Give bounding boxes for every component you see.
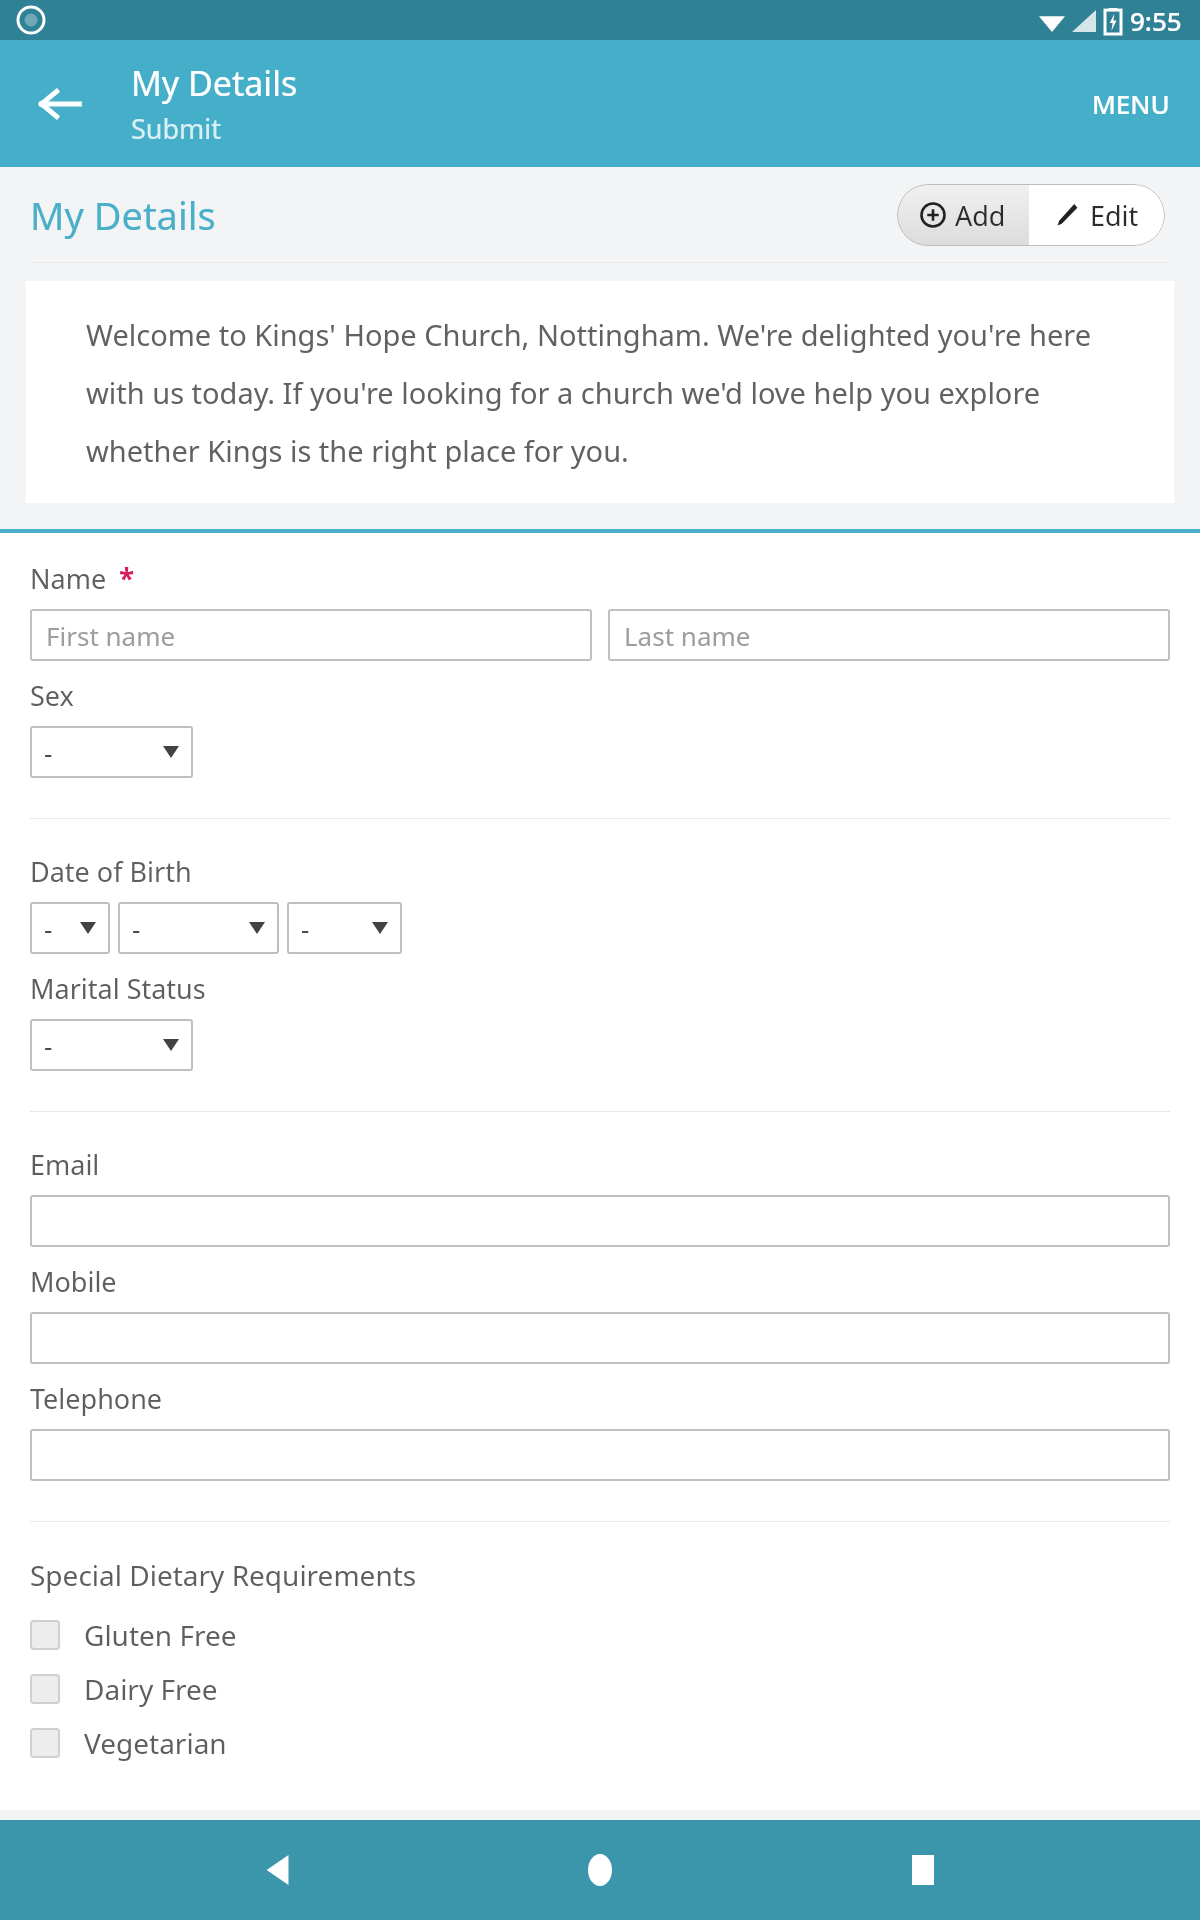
staticText: Edit <box>1090 197 1139 234</box>
staticText: Submit <box>131 110 222 147</box>
button[interactable]: Select option <box>30 902 110 954</box>
button[interactable]: Select option <box>287 902 402 954</box>
button[interactable]: MENU <box>1084 74 1178 133</box>
staticText: Name <box>30 560 107 597</box>
staticText: Gluten Free <box>84 1616 237 1654</box>
staticText: - <box>44 911 53 946</box>
button[interactable]: Select option <box>30 1019 193 1071</box>
staticText: Marital Status <box>30 970 206 1007</box>
staticText: - <box>132 911 141 946</box>
staticText: Welcome to Kings' Hope Church, Nottingha… <box>86 315 1114 470</box>
button[interactable]: Back <box>233 1825 323 1915</box>
staticText: Vegetarian <box>84 1724 227 1762</box>
button[interactable] <box>30 1195 1170 1247</box>
staticText: Telephone <box>30 1380 163 1417</box>
staticText: Dairy Free <box>84 1670 218 1708</box>
staticText: Date of Birth <box>30 853 192 890</box>
staticText: * <box>119 559 135 597</box>
staticText: - <box>44 1028 53 1063</box>
staticText: 9:55 <box>1130 3 1182 38</box>
staticText: MENU <box>1092 86 1170 121</box>
button[interactable]: Last name <box>608 609 1170 661</box>
staticText: Last name <box>624 618 751 653</box>
staticText: Sex <box>30 677 74 714</box>
button[interactable]: Home <box>555 1825 645 1915</box>
button[interactable]: Edit <box>1029 184 1165 246</box>
staticText: My Details <box>131 60 298 106</box>
staticText: Special Dietary Requirements <box>30 1556 417 1594</box>
staticText: First name <box>46 618 176 653</box>
button[interactable]: Dairy Free <box>30 1662 1170 1716</box>
staticText: - <box>301 911 310 946</box>
button[interactable]: First name <box>30 609 592 661</box>
staticText: Mobile <box>30 1263 117 1300</box>
button[interactable]: Select option <box>30 726 193 778</box>
button[interactable]: Recent apps <box>878 1825 968 1915</box>
staticText: My Details <box>30 189 216 241</box>
button[interactable]: Add <box>897 184 1029 246</box>
staticText: Email <box>30 1146 100 1183</box>
staticText: - <box>44 735 53 770</box>
button[interactable]: Back <box>24 68 96 140</box>
button[interactable]: Select option <box>118 902 279 954</box>
button[interactable] <box>30 1429 1170 1481</box>
button[interactable]: Vegetarian <box>30 1716 1170 1770</box>
button[interactable]: Gluten Free <box>30 1608 1170 1662</box>
button[interactable] <box>30 1312 1170 1364</box>
staticText: Add <box>955 197 1006 234</box>
